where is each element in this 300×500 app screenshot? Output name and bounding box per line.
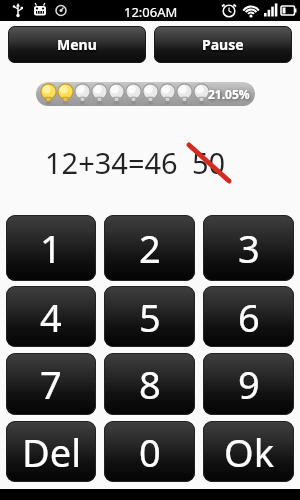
staticText: 12+34=46 [45, 143, 178, 182]
button[interactable]: 0 [104, 421, 195, 482]
staticText: 5 [139, 291, 161, 343]
staticText: 4 [40, 291, 62, 343]
button[interactable]: Pause [154, 26, 292, 63]
staticText: 2 [139, 222, 161, 274]
staticText: Del [22, 426, 81, 478]
button[interactable]: 1 [6, 215, 96, 281]
staticText: 1 [40, 222, 62, 274]
button[interactable]: 4 [6, 286, 96, 347]
staticText: 7 [40, 358, 62, 410]
staticText: 21.05% [208, 86, 250, 102]
staticText: 50 [192, 143, 226, 182]
button[interactable]: Del [6, 421, 96, 482]
button[interactable]: Menu [8, 26, 146, 63]
button[interactable]: 5 [104, 286, 195, 347]
button[interactable]: 7 [6, 353, 96, 415]
staticText: 0 [139, 426, 161, 478]
button[interactable]: 2 [104, 215, 195, 281]
button[interactable]: 3 [203, 215, 294, 281]
staticText: 3 [238, 222, 260, 274]
staticText: 9 [238, 358, 260, 410]
staticText: Ok [224, 426, 274, 478]
staticText: 12:06AM [124, 3, 178, 21]
button[interactable]: 6 [203, 286, 294, 347]
staticText: Pause [202, 35, 244, 54]
staticText: Menu [57, 35, 97, 54]
staticText: 6 [238, 291, 260, 343]
staticText: 8 [139, 358, 161, 410]
button[interactable]: 9 [203, 353, 294, 415]
button[interactable]: 8 [104, 353, 195, 415]
button[interactable]: Ok [203, 421, 294, 482]
